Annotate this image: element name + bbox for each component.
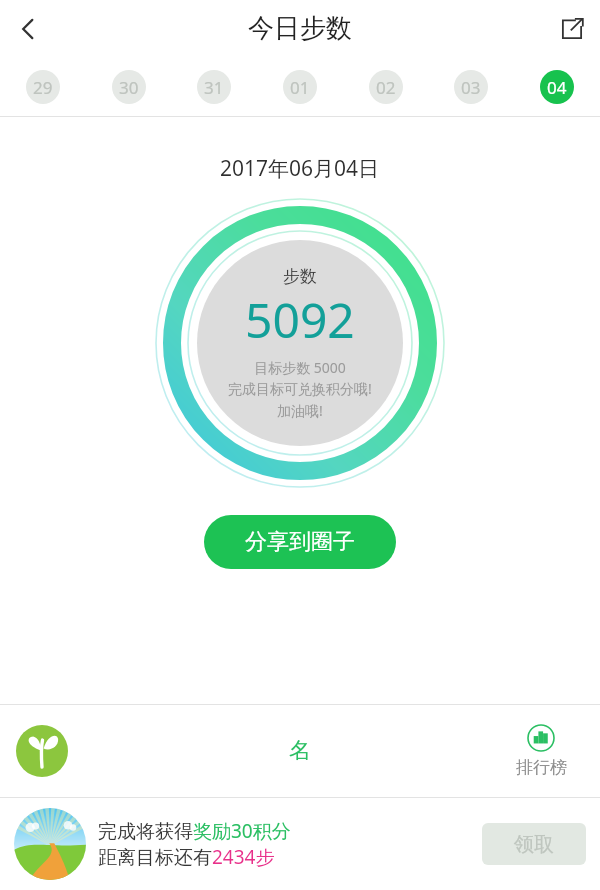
button[interactable]: Sprout	[10, 719, 74, 783]
button[interactable]: 分享到圈子	[204, 515, 396, 569]
staticText: 目标步数 5000 完成目标可兑换积分哦! 加油哦!	[228, 358, 372, 421]
staticText: 分享到圈子	[245, 528, 355, 556]
button[interactable]: 29	[26, 70, 60, 104]
button[interactable]: 01	[283, 70, 317, 104]
button[interactable]: 30	[112, 70, 146, 104]
staticText: 02	[376, 76, 396, 99]
staticText: 31	[204, 76, 224, 99]
button[interactable]: 领取	[482, 823, 586, 865]
button[interactable]: 04	[540, 70, 574, 104]
staticText: 2017年06月04日	[220, 154, 380, 183]
button[interactable]: 31	[197, 70, 231, 104]
staticText: 领取	[514, 832, 554, 857]
button[interactable]: 名	[240, 716, 360, 786]
staticText: 完成将获得奖励30积分	[98, 818, 291, 844]
staticText: 今日步数	[248, 12, 352, 45]
staticText: 03	[461, 76, 481, 99]
staticText: 排行榜	[516, 757, 567, 778]
button[interactable]: 03	[454, 70, 488, 104]
staticText: 30	[119, 76, 139, 99]
button[interactable]: Back	[0, 1, 56, 57]
button[interactable]: 02	[369, 70, 403, 104]
staticText: 步数	[283, 266, 317, 287]
staticText: 04	[547, 76, 567, 99]
staticText: 名	[289, 737, 311, 765]
button[interactable]: 排行榜	[502, 724, 580, 778]
staticText: 距离目标还有2434步	[98, 844, 275, 870]
staticText: 29	[33, 76, 53, 99]
staticText: 01	[290, 76, 310, 99]
button[interactable]: Share	[544, 1, 600, 57]
staticText: 5092	[245, 287, 355, 352]
